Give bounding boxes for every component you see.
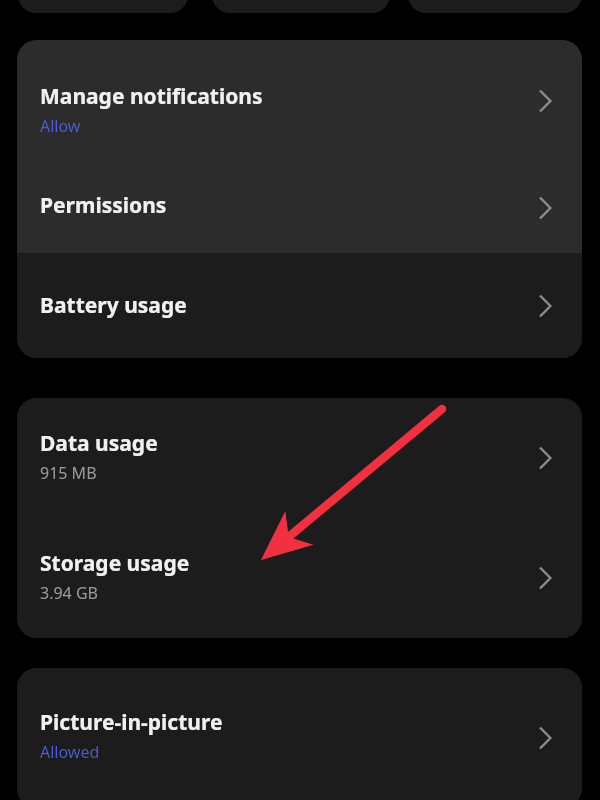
other: Open bbox=[534, 724, 556, 752]
staticText: 915 MB bbox=[40, 462, 97, 484]
button[interactable]: Chip 3 bbox=[408, 0, 582, 13]
staticText: Allow bbox=[40, 115, 81, 137]
other: Open bbox=[534, 292, 556, 320]
button[interactable]: Picture-in-picture bbox=[17, 668, 582, 800]
button[interactable]: Storage usage bbox=[17, 518, 582, 638]
button[interactable]: Chip 2 bbox=[212, 0, 390, 13]
other: Open bbox=[534, 444, 556, 472]
other: Open bbox=[534, 194, 556, 222]
other: Open bbox=[534, 564, 556, 592]
staticText: Battery usage bbox=[40, 291, 187, 320]
staticText: Manage notifications bbox=[40, 82, 263, 111]
other: Open bbox=[534, 87, 556, 115]
staticText: Picture-in-picture bbox=[40, 708, 223, 737]
button[interactable]: Manage notifications bbox=[17, 40, 582, 162]
staticText: Permissions bbox=[40, 191, 167, 220]
button[interactable]: Chip 1 bbox=[18, 0, 188, 13]
button[interactable]: Permissions bbox=[17, 162, 582, 253]
staticText: 3.94 GB bbox=[40, 582, 98, 604]
button[interactable]: Data usage bbox=[17, 398, 582, 518]
staticText: Storage usage bbox=[40, 549, 190, 578]
staticText: Allowed bbox=[40, 741, 100, 763]
button[interactable]: Battery usage bbox=[17, 253, 582, 358]
staticText: Data usage bbox=[40, 429, 158, 458]
